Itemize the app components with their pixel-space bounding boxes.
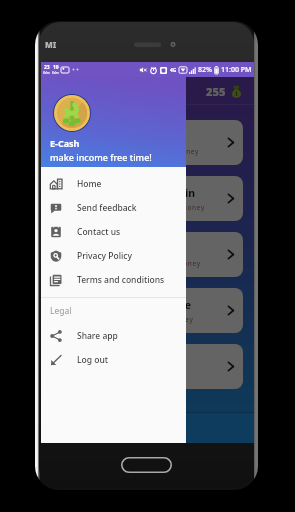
staticText: Invite Friends And Share xyxy=(63,298,192,312)
staticText: make income free time! xyxy=(50,151,152,163)
button[interactable]: Privacy Policy xyxy=(41,244,186,268)
button[interactable]: Watch Ads xyxy=(52,120,243,165)
button[interactable]: Redeem Your Balance xyxy=(52,344,243,389)
staticText: 82% xyxy=(198,65,212,75)
staticText: 4G xyxy=(170,67,177,74)
staticText: Log out xyxy=(77,354,108,366)
button[interactable]: Log out xyxy=(41,348,186,372)
staticText: 19 xyxy=(53,64,59,71)
staticText: spin the lucky wheel and earn money xyxy=(63,259,201,268)
staticText: Send feedback xyxy=(77,202,137,214)
staticText: 255 xyxy=(206,84,226,99)
staticText: Legal xyxy=(50,305,72,317)
staticText: Kdm xyxy=(43,71,50,75)
staticText: 23 xyxy=(44,64,50,71)
staticText: Redeem Your Balance xyxy=(63,354,177,368)
staticText: Terms and conditions xyxy=(77,274,165,286)
button[interactable]: Profile xyxy=(41,413,254,443)
staticText: withdraw the instant earn money xyxy=(63,371,187,380)
button[interactable]: Terms and conditions xyxy=(41,268,186,292)
staticText: Daily Spin xyxy=(63,242,115,256)
staticText: Contact us xyxy=(77,226,121,238)
staticText: Complete Offers And Win xyxy=(63,186,196,200)
button[interactable]: Invite Friends And Share xyxy=(52,288,243,333)
staticText: Kdm xyxy=(52,71,59,75)
button[interactable]: Complete Offers And Win xyxy=(52,176,243,221)
staticText: refer your best friends earn money xyxy=(63,315,194,324)
staticText: Privacy Policy xyxy=(77,250,132,262)
staticText: MI xyxy=(45,39,57,50)
staticText: Watch Ads xyxy=(63,130,118,144)
button[interactable]: Send feedback xyxy=(41,196,186,220)
staticText: complete the simple offer earn money xyxy=(63,203,206,212)
button[interactable]: Share app xyxy=(41,324,186,348)
staticText: Share app xyxy=(77,330,118,342)
staticText: Home xyxy=(77,178,102,190)
staticText: 11:00 PM xyxy=(221,65,252,75)
button[interactable]: Daily Spin xyxy=(52,232,243,277)
button[interactable]: Contact us xyxy=(41,220,186,244)
button[interactable]: Home xyxy=(41,172,186,196)
staticText: E-Cash xyxy=(50,137,80,149)
staticText: watch the video ads and earn money xyxy=(63,147,200,156)
